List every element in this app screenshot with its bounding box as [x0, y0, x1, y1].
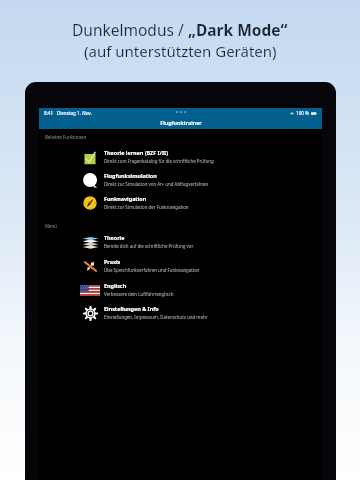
button[interactable]: Praxis [39, 254, 322, 277]
staticText: Verbessere dein Luftfahrtenglisch [104, 291, 174, 297]
staticText: Menü [45, 223, 57, 229]
staticText: Theorie lernen (BZF I/II) [104, 149, 168, 156]
staticText: Direkt zur Simulation der Funknavigation [104, 204, 189, 210]
staticText: Direkt zur Simulation von An- und Abflug… [104, 181, 209, 187]
staticText: Einstellungen & Info [104, 305, 159, 312]
staticText: Dunkelmodus / [72, 19, 188, 40]
button[interactable]: Flugfunksimulation [39, 168, 322, 191]
button[interactable]: Theorie lernen (BZF I/II) [39, 145, 322, 168]
staticText: Flugfunksimulation [104, 172, 157, 179]
staticText: Flugfunktrainer [160, 119, 202, 126]
staticText: (auf unterstützten Geräten) [84, 41, 277, 61]
staticText: Englisch [104, 282, 127, 289]
staticText: 100 % [296, 110, 309, 116]
staticText: 8:41 Dienstag 1. Nov. [44, 110, 92, 116]
staticText: Beliebte Funktionen [45, 134, 87, 140]
button[interactable]: Theorie [39, 230, 322, 253]
button[interactable]: Einstellungen & Info [39, 301, 322, 324]
staticText: Funknavigation [104, 195, 147, 202]
staticText: Einstellungen, Impressum, Datenschutz un… [104, 314, 208, 320]
staticText: Direkt zum Fragenkatalog für die schrift… [104, 158, 214, 164]
button[interactable]: Englisch [39, 278, 322, 301]
staticText: Praxis [104, 258, 121, 265]
staticText: Bereite dich auf die schriftliche Prüfun… [104, 243, 194, 249]
button[interactable]: Funknavigation [39, 191, 322, 214]
staticText: Theorie [104, 234, 125, 241]
staticText: Übe Sprechfunkverfahren und Funknavigati… [104, 267, 200, 273]
staticText: „Dark Mode“ [188, 19, 288, 40]
